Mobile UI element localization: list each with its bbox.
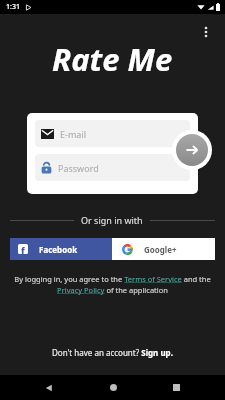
staticText: Google+ xyxy=(144,244,177,255)
staticText: f xyxy=(21,244,25,254)
staticText: Facebook xyxy=(39,244,78,255)
button[interactable]: Password xyxy=(35,154,190,181)
button[interactable]: Home xyxy=(98,375,128,400)
staticText: By logging in, you agree to the Terms of… xyxy=(10,274,215,295)
staticText: 1:31 xyxy=(6,2,20,12)
button[interactable]: E-mail xyxy=(35,120,190,147)
button[interactable]: Don't have an account? Sign up. xyxy=(44,344,181,361)
button[interactable]: Back xyxy=(34,375,64,400)
staticText: Don't have an account? Sign up. xyxy=(52,347,173,358)
button[interactable]: Recent apps xyxy=(161,375,191,400)
staticText: Rate Me xyxy=(52,38,173,80)
button[interactable]: Google+ xyxy=(112,238,215,260)
staticText: E-mail xyxy=(60,128,87,140)
staticText: Or sign in with xyxy=(81,214,143,226)
button[interactable]: Sign in xyxy=(176,134,208,166)
button[interactable]: f xyxy=(10,238,112,260)
button[interactable]: More options xyxy=(193,19,219,45)
staticText: Password xyxy=(58,162,99,174)
